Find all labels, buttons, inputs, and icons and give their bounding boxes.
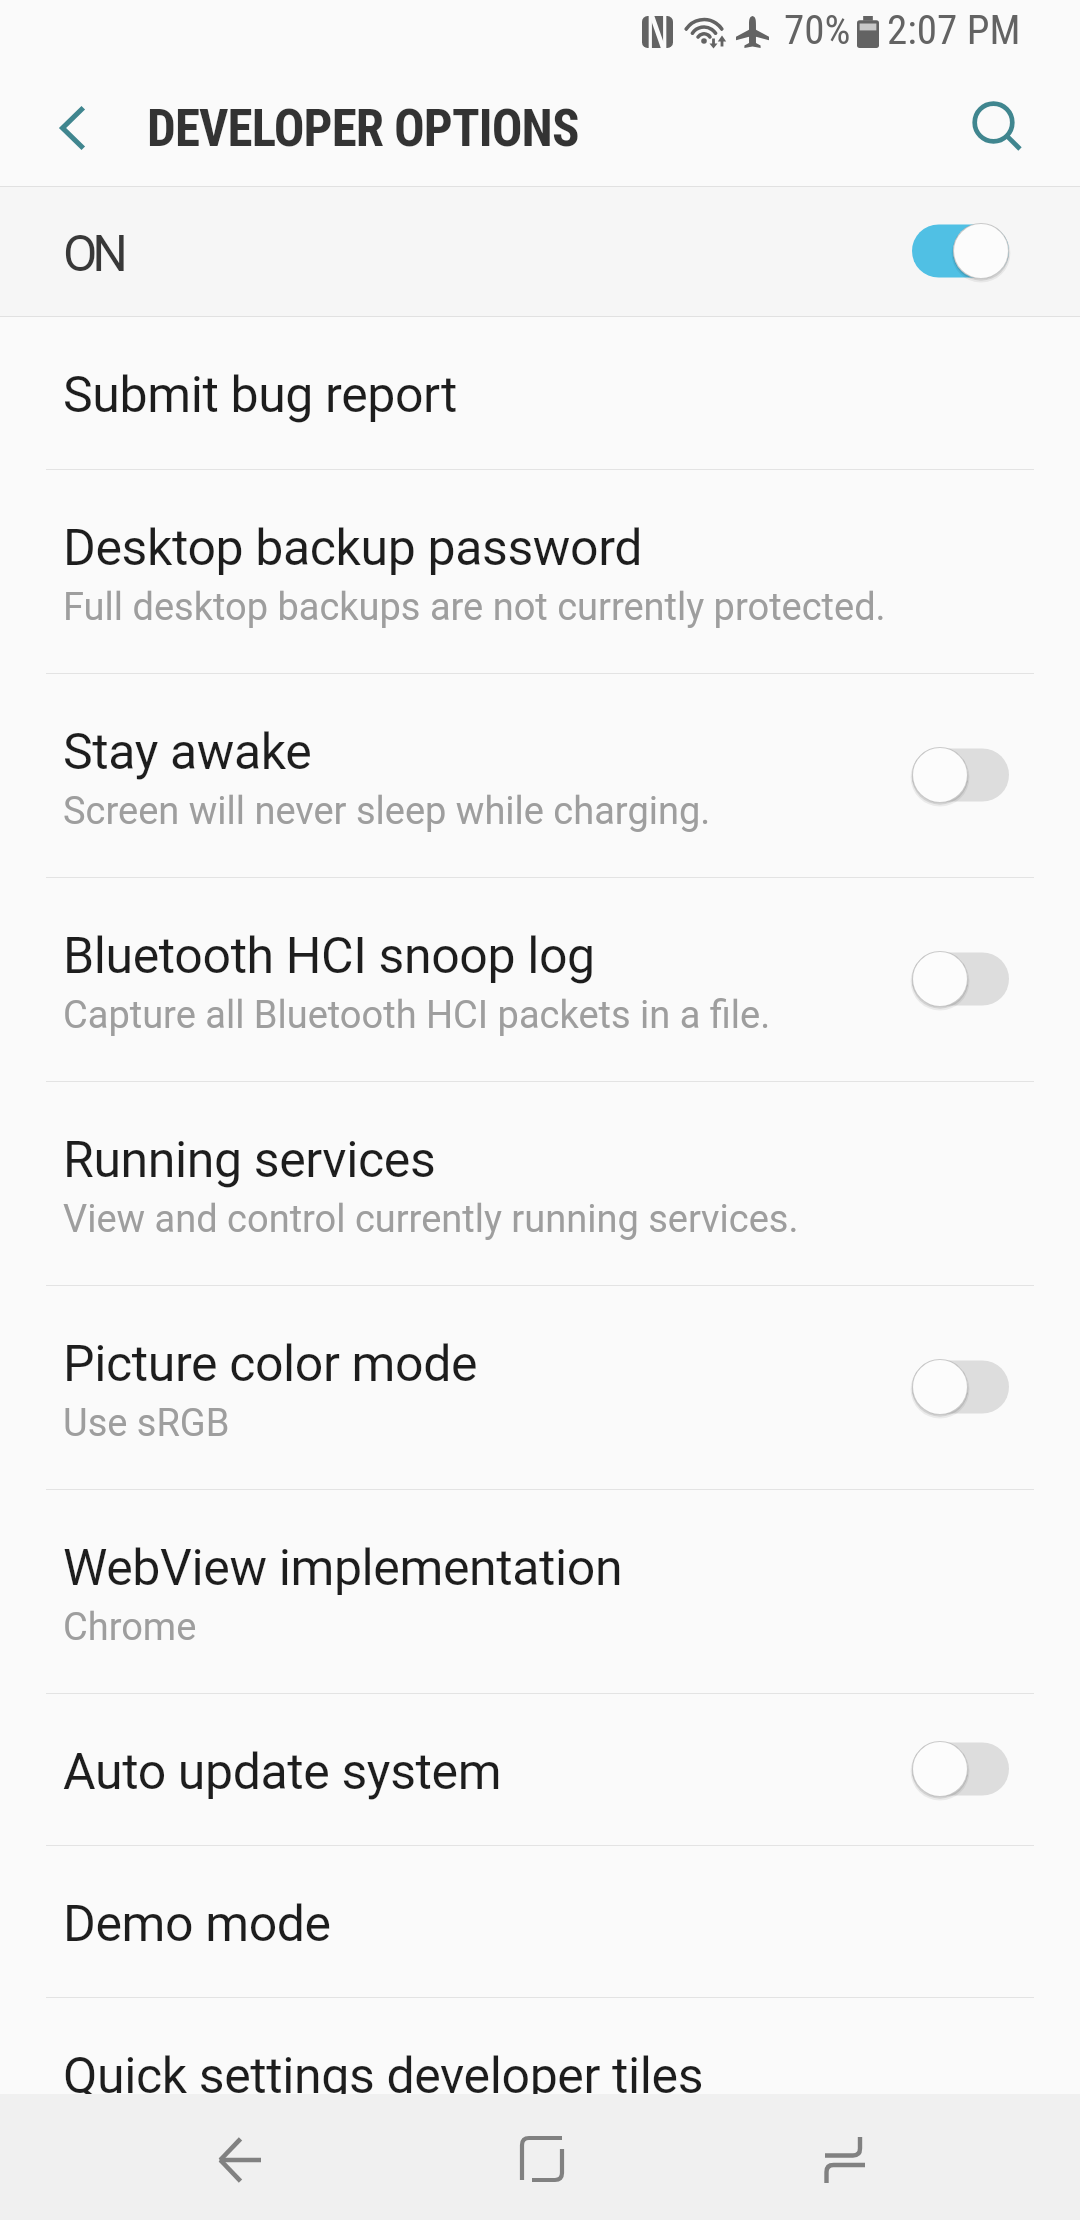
button[interactable]: Home	[470, 2094, 610, 2220]
staticText: Screen will never sleep while charging.	[63, 789, 711, 834]
staticText: 70%	[784, 6, 851, 54]
staticText: Auto update system	[63, 1743, 502, 1802]
staticText: Demo mode	[63, 1895, 331, 1954]
button[interactable]: WebView implementation	[0, 1489, 1080, 1693]
button[interactable]: Picture color mode	[912, 1358, 1009, 1416]
button[interactable]: ON	[0, 187, 1080, 316]
button[interactable]: Demo mode	[0, 1845, 1080, 1997]
button[interactable]: Developer options on	[912, 222, 1009, 280]
staticText: Stay awake	[63, 723, 312, 782]
staticText: Desktop backup password	[63, 519, 643, 578]
button[interactable]: Desktop backup password	[0, 469, 1080, 673]
button[interactable]: Navigate up	[0, 72, 144, 186]
button[interactable]: Bluetooth HCI snoop log	[912, 950, 1009, 1008]
staticText: 2:07 PM	[887, 6, 1021, 54]
staticText: Chrome	[63, 1605, 197, 1650]
staticText: DEVELOPER OPTIONS	[147, 99, 579, 159]
button[interactable]: Auto update system	[0, 1693, 1080, 1845]
staticText: WebView implementation	[63, 1539, 623, 1598]
button[interactable]: Running services	[0, 1081, 1080, 1285]
staticText: Capture all Bluetooth HCI packets in a f…	[63, 993, 771, 1038]
staticText: Bluetooth HCI snoop log	[63, 927, 595, 986]
staticText: Use sRGB	[63, 1401, 230, 1446]
button[interactable]: Back	[168, 2094, 308, 2220]
button[interactable]: Auto update system	[912, 1740, 1009, 1798]
button[interactable]: Recent apps	[774, 2094, 914, 2220]
staticText: Picture color mode	[63, 1335, 478, 1394]
staticText: Quick settings developer tiles	[63, 2047, 704, 2106]
button[interactable]: Picture color mode	[0, 1285, 1080, 1489]
button[interactable]: Submit bug report	[0, 316, 1080, 469]
staticText: Full desktop backups are not currently p…	[63, 585, 886, 630]
staticText: ON	[63, 225, 123, 284]
staticText: Submit bug report	[63, 366, 457, 425]
staticText: Running services	[63, 1131, 436, 1190]
button[interactable]: Stay awake	[0, 673, 1080, 877]
staticText: View and control currently running servi…	[63, 1197, 799, 1242]
button[interactable]: Search	[948, 72, 1080, 186]
button[interactable]: Stay awake	[912, 746, 1009, 804]
button[interactable]: Bluetooth HCI snoop log	[0, 877, 1080, 1081]
button[interactable]: Quick settings developer tiles	[0, 1997, 1080, 2094]
